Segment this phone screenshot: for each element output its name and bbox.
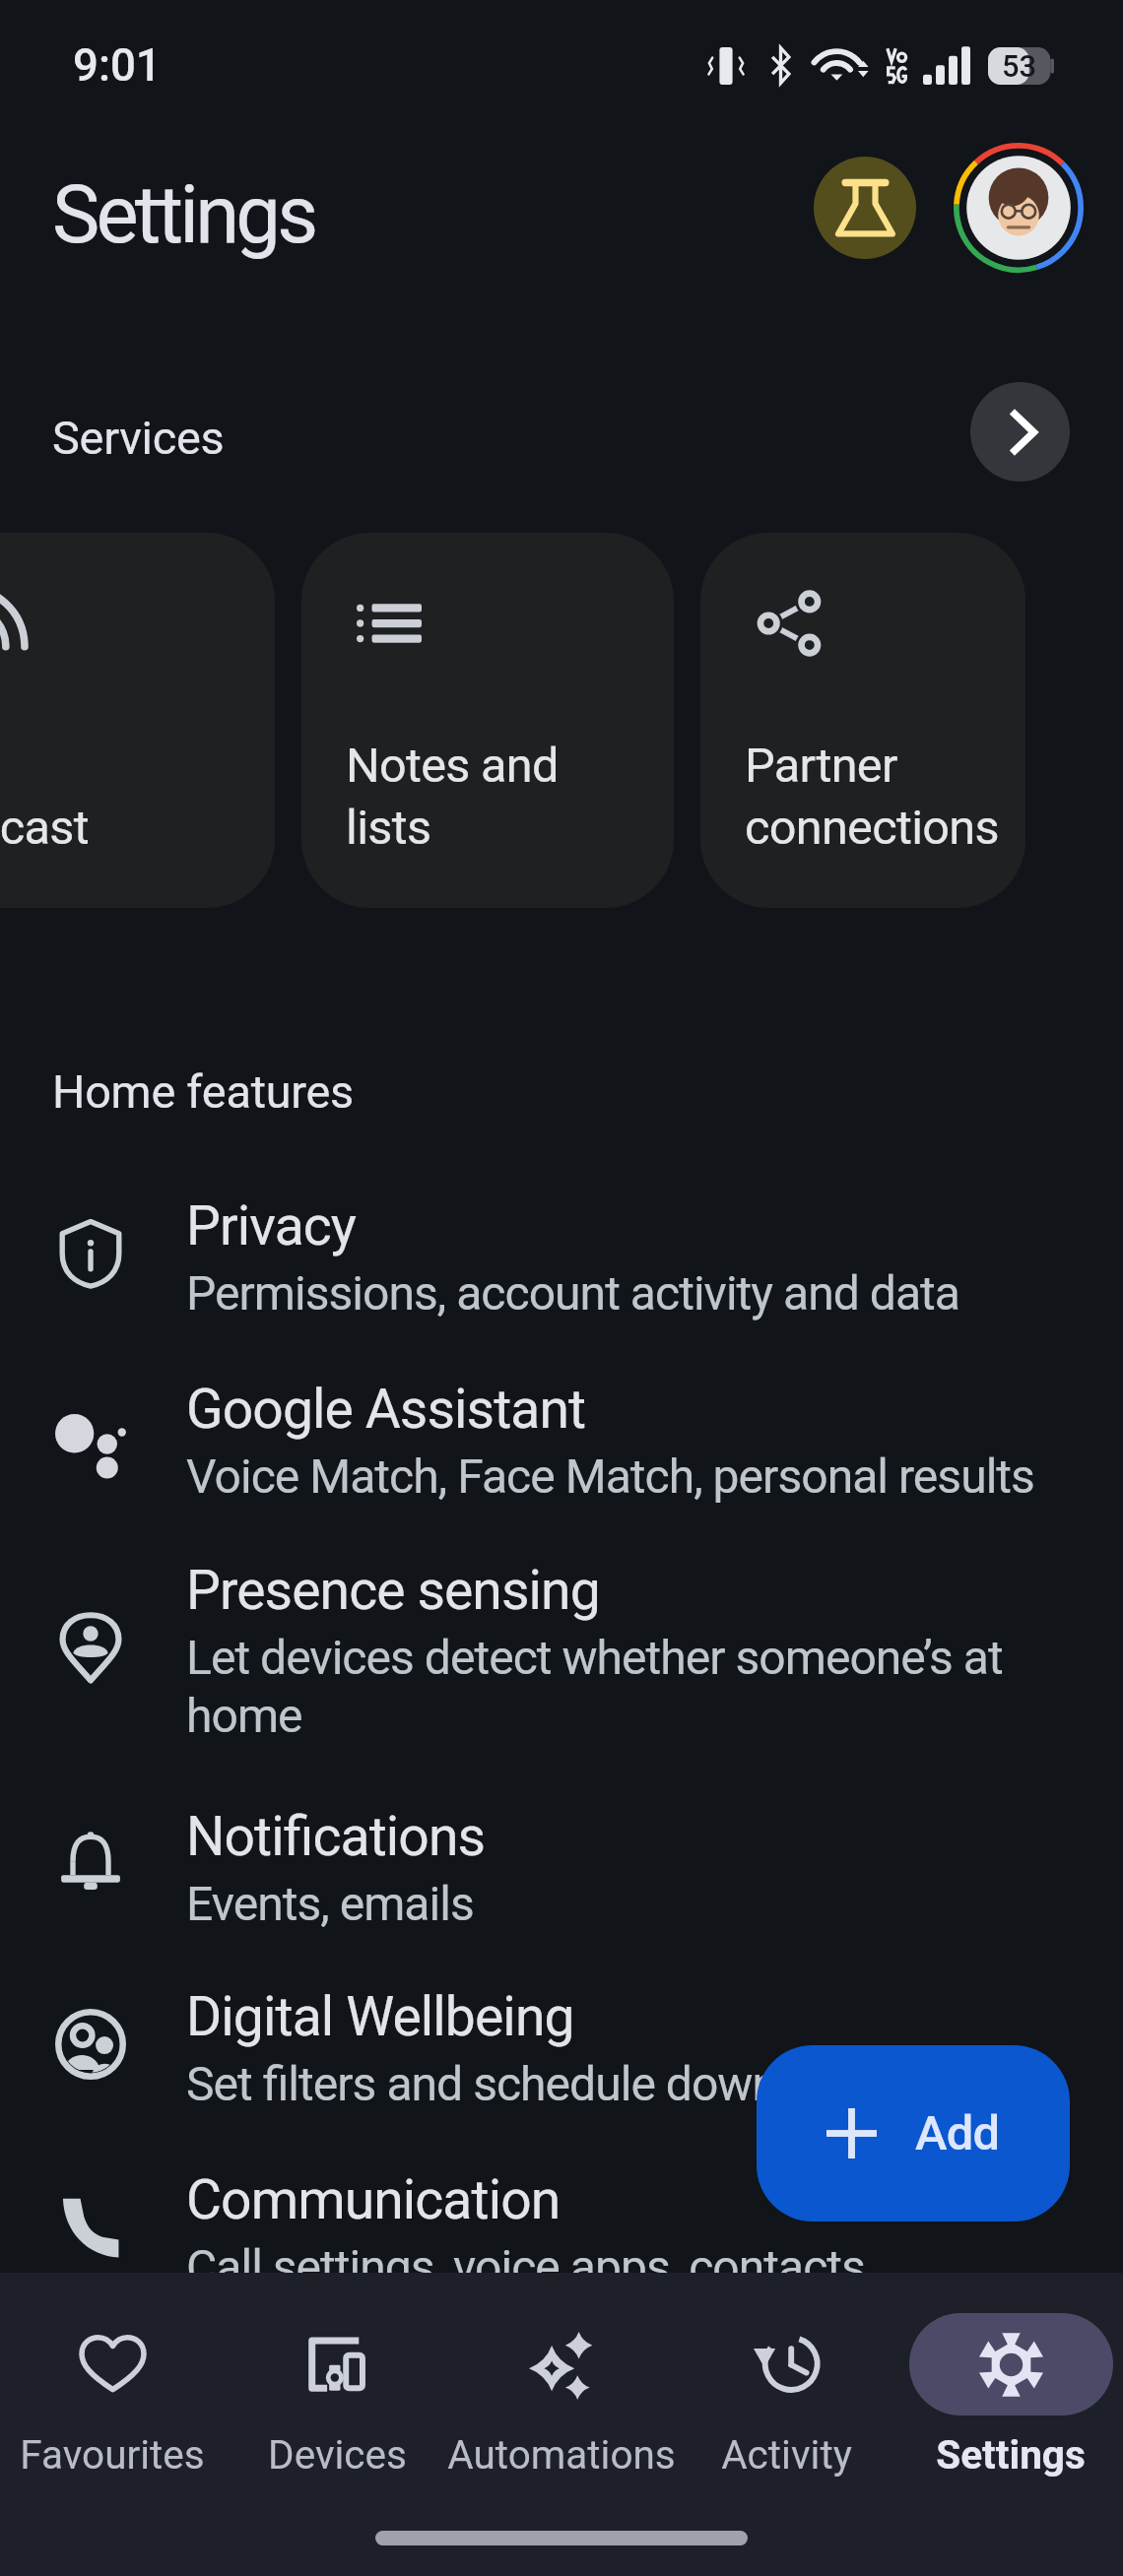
- staticText: Activity: [721, 2431, 852, 2478]
- staticText: Favourites: [20, 2431, 205, 2478]
- button[interactable]: Digital Wellbeing: [0, 1960, 1123, 2090]
- staticText: Privacy: [186, 1194, 357, 1258]
- staticText: Notes and: [346, 738, 559, 794]
- staticText: 53: [1002, 48, 1037, 84]
- button[interactable]: Partner: [700, 533, 1025, 908]
- button[interactable]: Notifications: [0, 1779, 1123, 1909]
- staticText: Add: [915, 2105, 1000, 2161]
- button[interactable]: Add: [757, 2045, 1070, 2222]
- button[interactable]: Communication: [0, 2143, 1123, 2273]
- button[interactable]: Privacy: [0, 1169, 1123, 1299]
- staticText: Home features: [52, 1065, 354, 1120]
- staticText: Partner: [745, 738, 897, 794]
- staticText: Set filters and schedule downtime: [186, 2056, 868, 2111]
- button[interactable]: odcast: [0, 533, 275, 908]
- staticText: Services: [52, 412, 225, 466]
- staticText: Settings: [936, 2431, 1086, 2478]
- staticText: odcast: [0, 800, 89, 856]
- button[interactable]: Activity: [674, 2273, 898, 2497]
- staticText: Google Assistant: [186, 1378, 586, 1442]
- staticText: Voice Match, Face Match, personal result…: [186, 1449, 1034, 1504]
- staticText: Settings: [52, 168, 315, 262]
- button[interactable]: Presence sensing: [0, 1533, 1123, 1725]
- button[interactable]: Experiments: [814, 157, 916, 259]
- staticText: connections: [745, 800, 999, 856]
- button[interactable]: Notes and: [301, 533, 674, 908]
- button[interactable]: Automations: [449, 2273, 674, 2497]
- button[interactable]: Google Assistant: [0, 1352, 1123, 1482]
- staticText: Events, emails: [186, 1876, 474, 1931]
- staticText: Devices: [268, 2431, 407, 2478]
- staticText: 9:01: [73, 39, 162, 92]
- staticText: Presence sensing: [186, 1559, 600, 1623]
- staticText: Communication: [186, 2168, 561, 2232]
- staticText: Permissions, account activity and data: [186, 1265, 959, 1320]
- staticText: Automations: [447, 2431, 676, 2478]
- button[interactable]: Devices: [225, 2273, 449, 2497]
- button[interactable]: Open services: [970, 382, 1070, 482]
- staticText: Notifications: [186, 1805, 486, 1869]
- staticText: Let devices detect whether someone’s at …: [186, 1630, 1037, 1744]
- staticText: Digital Wellbeing: [186, 1985, 574, 2049]
- button[interactable]: Settings: [898, 2273, 1123, 2497]
- staticText: lists: [346, 800, 431, 856]
- button[interactable]: Account: [954, 143, 1084, 273]
- button[interactable]: Favourites: [0, 2273, 225, 2497]
- staticText: Call settings, voice apps, contacts: [186, 2239, 865, 2294]
